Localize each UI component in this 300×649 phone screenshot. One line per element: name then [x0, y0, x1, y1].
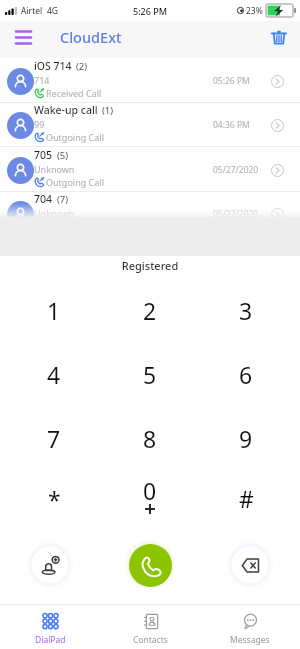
staticText: CloudExt	[60, 27, 122, 47]
button[interactable]: 9	[198, 406, 294, 470]
staticText: Unknown	[34, 207, 75, 219]
staticText: 1	[47, 295, 61, 326]
staticText: Airtel	[21, 5, 43, 17]
staticText: 04:36 PM	[213, 119, 250, 131]
button[interactable]: 1	[6, 278, 102, 342]
staticText: Outgoing Call	[46, 176, 104, 188]
button[interactable]: 7	[6, 406, 102, 470]
staticText: Wake-up call	[34, 103, 98, 117]
button[interactable]: 3	[198, 278, 294, 342]
staticText: 4G	[47, 5, 59, 17]
button[interactable]: Delete	[264, 22, 294, 52]
button[interactable]: 705	[0, 148, 300, 192]
button[interactable]: 2	[102, 278, 198, 342]
staticText: Contacts	[133, 634, 168, 646]
staticText: 5	[143, 359, 157, 390]
button[interactable]: Add contact	[26, 541, 74, 589]
staticText: (5)	[57, 149, 69, 162]
staticText: #	[239, 483, 254, 514]
staticText: Unknown	[34, 163, 75, 175]
button[interactable]: 8	[102, 406, 198, 470]
button[interactable]: Call	[129, 544, 172, 587]
button[interactable]: 704	[0, 192, 300, 236]
staticText: 5:26 PM	[133, 5, 167, 17]
button[interactable]: 6	[198, 342, 294, 406]
button[interactable]: iOS 714	[0, 59, 300, 103]
staticText: 3	[239, 295, 253, 326]
staticText: 99	[34, 118, 45, 130]
button[interactable]: 5	[102, 342, 198, 406]
button[interactable]: Messages	[200, 613, 300, 649]
button[interactable]: Backspace	[226, 541, 274, 589]
staticText: 9	[239, 423, 253, 454]
staticText: DialPad	[35, 634, 66, 646]
staticText: 714	[34, 74, 50, 86]
button[interactable]: #	[198, 470, 294, 534]
staticText: Registered	[0, 258, 300, 273]
staticText: (7)	[57, 193, 69, 206]
button[interactable]: *	[6, 470, 102, 534]
staticText: 05/27/2020	[213, 164, 259, 176]
staticText: Messages	[230, 634, 270, 646]
staticText: 2	[143, 295, 157, 326]
staticText: Received Call	[46, 87, 102, 99]
staticText: 0	[143, 475, 157, 506]
staticText: (2)	[76, 60, 88, 73]
button[interactable]: Contacts	[100, 613, 200, 649]
staticText: *	[48, 484, 61, 515]
staticText: 8	[143, 423, 157, 454]
staticText: Outgoing Call	[46, 131, 104, 143]
staticText: (1)	[102, 104, 114, 117]
button[interactable]: DialPad	[0, 613, 100, 649]
staticText: 6	[239, 359, 253, 390]
staticText: 705	[34, 148, 53, 162]
staticText: 704	[34, 192, 53, 206]
button[interactable]: 4	[6, 342, 102, 406]
button[interactable]: Menu	[8, 22, 38, 52]
staticText: iOS 714	[34, 59, 72, 73]
staticText: 05/27/2020	[213, 208, 259, 220]
staticText: 4	[47, 359, 61, 390]
staticText: 7	[47, 423, 61, 454]
button[interactable]: 0	[102, 470, 198, 534]
button[interactable]: Wake-up call	[0, 103, 300, 147]
staticText: 23%	[246, 5, 263, 17]
staticText: 05:26 PM	[213, 75, 250, 87]
